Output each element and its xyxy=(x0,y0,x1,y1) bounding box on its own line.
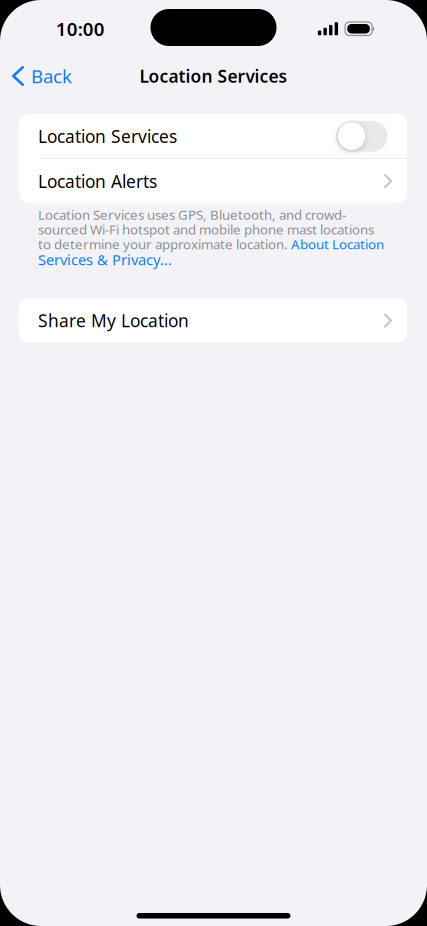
button[interactable]: Location Services xyxy=(19,114,407,158)
staticText: to determine your approximate location. xyxy=(38,235,291,253)
staticText: Location Services uses GPS, Bluetooth, a… xyxy=(38,206,346,223)
button[interactable]: Share My Location xyxy=(19,298,407,343)
button[interactable]: Back xyxy=(12,64,72,88)
staticText: Location Services xyxy=(38,125,177,148)
staticText: About Location xyxy=(291,235,384,253)
staticText: Share My Location xyxy=(38,309,189,332)
staticText: Services & Privacy... xyxy=(38,250,172,269)
button[interactable]: Location Alerts xyxy=(19,159,407,203)
staticText: 10:00 xyxy=(56,16,105,41)
staticText: Location Alerts xyxy=(38,170,157,193)
staticText: Back xyxy=(31,64,72,88)
staticText: Location Services xyxy=(139,64,287,87)
button[interactable]: About Location Services & Privacy xyxy=(38,250,172,269)
staticText: sourced Wi-Fi hotspot and mobile phone m… xyxy=(38,220,374,238)
